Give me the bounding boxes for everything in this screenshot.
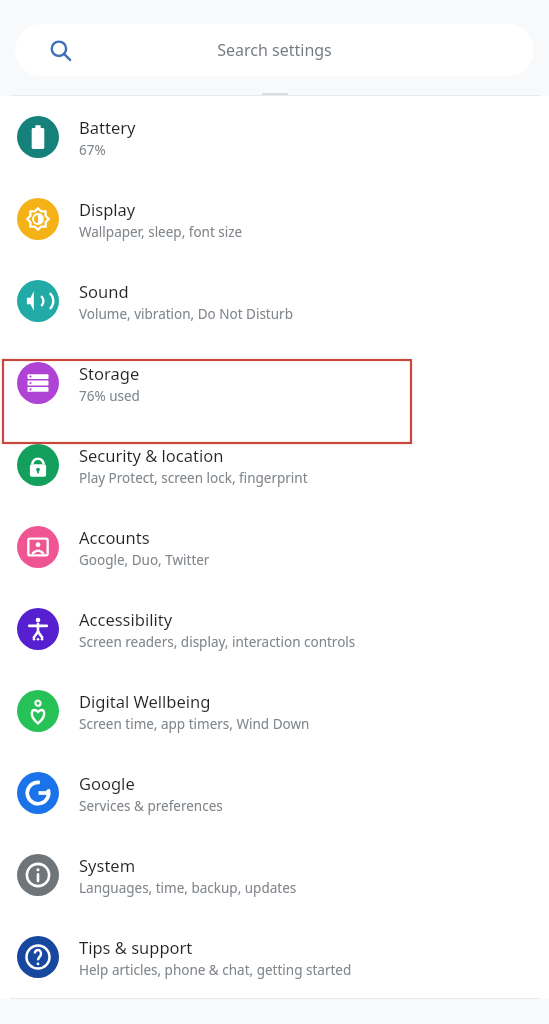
staticText: Wallpaper, sleep, font size — [79, 223, 243, 241]
button[interactable]: Digital Wellbeing — [0, 670, 549, 752]
other: Search — [48, 38, 72, 62]
button[interactable]: Battery — [0, 96, 549, 178]
staticText: Languages, time, backup, updates — [79, 879, 297, 897]
staticText: Accessibility — [79, 608, 173, 630]
button[interactable]: System — [0, 834, 549, 916]
button[interactable]: Security & location — [0, 424, 549, 506]
staticText: 76% used — [79, 387, 140, 405]
button[interactable]: Google — [0, 752, 549, 834]
button[interactable]: Accounts — [0, 506, 549, 588]
staticText: Search settings — [15, 39, 534, 61]
button[interactable]: Accessibility — [0, 588, 549, 670]
staticText: Sound — [79, 280, 129, 302]
button[interactable]: Sound — [0, 260, 549, 342]
staticText: 67% — [79, 141, 106, 159]
button[interactable]: Storage — [0, 342, 549, 424]
staticText: Screen readers, display, interaction con… — [79, 633, 356, 651]
staticText: Security & location — [79, 444, 224, 466]
staticText: Screen time, app timers, Wind Down — [79, 715, 310, 733]
staticText: Storage — [79, 362, 140, 384]
staticText: Google — [79, 772, 135, 794]
button[interactable]: Display — [0, 178, 549, 260]
staticText: Display — [79, 198, 136, 220]
staticText: Volume, vibration, Do Not Disturb — [79, 305, 293, 323]
button[interactable]: Tips & support — [0, 916, 549, 998]
staticText: Services & preferences — [79, 797, 223, 815]
staticText: Accounts — [79, 526, 150, 548]
staticText: Google, Duo, Twitter — [79, 551, 210, 569]
staticText: Play Protect, screen lock, fingerprint — [79, 469, 308, 487]
staticText: Battery — [79, 116, 136, 138]
staticText: System — [79, 854, 136, 876]
staticText: Help articles, phone & chat, getting sta… — [79, 961, 352, 979]
staticText: Digital Wellbeing — [79, 690, 211, 712]
staticText: Tips & support — [79, 936, 193, 958]
button[interactable]: Search — [15, 24, 534, 76]
